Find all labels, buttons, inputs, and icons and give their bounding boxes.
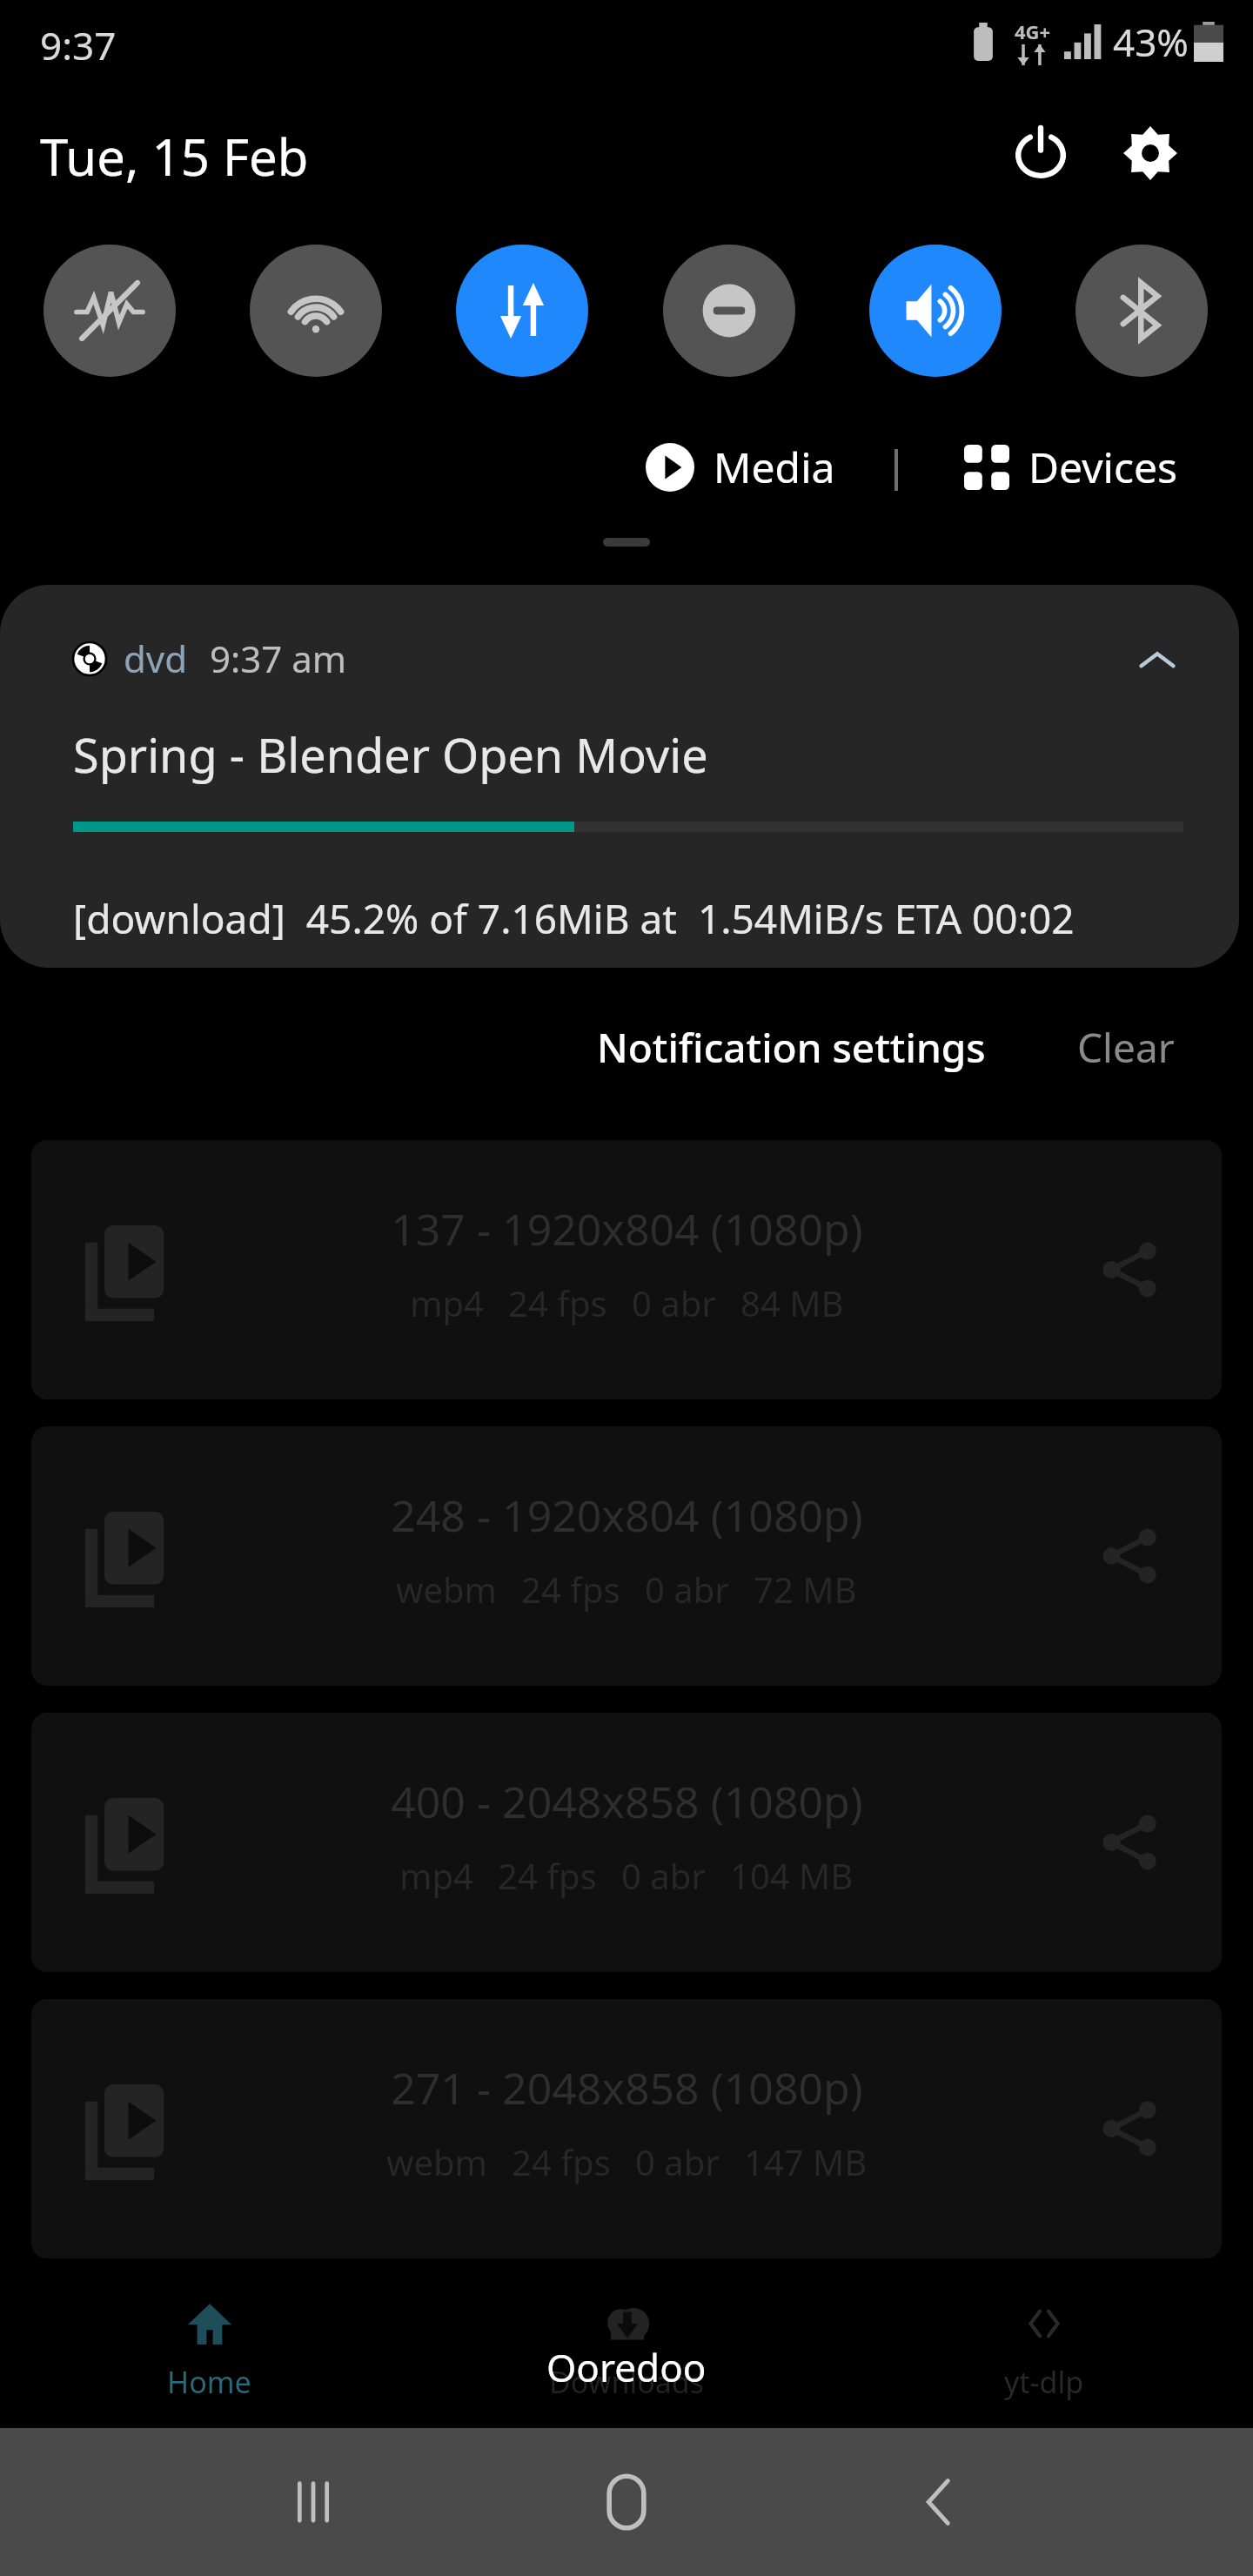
button[interactable]: Clear: [1063, 1010, 1189, 1085]
button[interactable]: 248 - 1920x804 (1080p): [31, 1426, 1222, 1686]
button[interactable]: Power: [999, 111, 1082, 195]
staticText: webm: [396, 1566, 497, 1613]
button[interactable]: Devices: [964, 439, 1178, 495]
button[interactable]: Do not disturb: [663, 245, 795, 377]
staticText: 147 MB: [744, 2138, 868, 2185]
staticText: [download] 45.2% of 7.16MiB at 1.54MiB/s…: [73, 891, 1075, 946]
staticText: Tue, 15 Feb: [40, 122, 309, 191]
button[interactable]: Wi-Fi: [250, 245, 382, 377]
button[interactable]: Sound: [869, 245, 1002, 377]
button[interactable]: Share: [1091, 1231, 1169, 1309]
staticText: mp4: [399, 1852, 473, 1899]
button[interactable]: Downloads: [418, 2298, 835, 2428]
staticText: Spring - Blender Open Movie: [73, 722, 708, 787]
staticText: mp4: [410, 1279, 484, 1326]
button[interactable]: Recents: [209, 2428, 418, 2576]
staticText: 24 fps: [512, 2138, 611, 2185]
button[interactable]: Media: [646, 439, 835, 495]
button[interactable]: Share: [1091, 2090, 1169, 2168]
staticText: 9:37 am: [210, 634, 347, 683]
staticText: 104 MB: [730, 1852, 854, 1899]
staticText: 137 - 1920x804 (1080p): [391, 1199, 863, 1258]
button[interactable]: yt-dlp: [835, 2298, 1253, 2428]
staticText: Media: [714, 439, 835, 495]
staticText: 84 MB: [740, 1279, 844, 1326]
button[interactable]: 400 - 2048x858 (1080p): [31, 1713, 1222, 1972]
staticText: Notification settings: [597, 1020, 986, 1075]
staticText: dvd: [124, 634, 187, 683]
staticText: 24 fps: [508, 1279, 607, 1326]
staticText: 4G+: [1015, 18, 1051, 44]
staticText: 0 abr: [635, 2138, 720, 2185]
staticText: Downloads: [549, 2362, 705, 2402]
staticText: 24 fps: [521, 1566, 620, 1613]
button[interactable]: Back: [835, 2428, 1044, 2576]
staticText: yt-dlp: [1004, 2362, 1084, 2402]
button[interactable]: Share: [1091, 1517, 1169, 1595]
staticText: 43%: [1113, 16, 1189, 68]
staticText: 0 abr: [645, 1566, 729, 1613]
button[interactable]: 271 - 2048x858 (1080p): [31, 1999, 1222, 2258]
button[interactable]: Mobile data: [456, 245, 588, 377]
staticText: 400 - 2048x858 (1080p): [391, 1772, 863, 1831]
button[interactable]: Vibrate: [44, 245, 176, 377]
staticText: Ooredoo: [546, 2341, 707, 2393]
button[interactable]: Collapse: [1122, 627, 1192, 696]
staticText: Devices: [1029, 439, 1178, 495]
button[interactable]: Home: [522, 2428, 731, 2576]
button[interactable]: 137 - 1920x804 (1080p): [31, 1140, 1222, 1399]
button[interactable]: dvd: [0, 585, 1239, 968]
staticText: 72 MB: [754, 1566, 857, 1613]
staticText: 271 - 2048x858 (1080p): [391, 2058, 863, 2117]
staticText: Clear: [1077, 1020, 1175, 1075]
staticText: Home: [167, 2362, 251, 2402]
button[interactable]: Bluetooth: [1075, 245, 1208, 377]
staticText: 248 - 1920x804 (1080p): [391, 1486, 863, 1545]
button[interactable]: Settings: [1109, 111, 1192, 195]
button[interactable]: Home: [0, 2298, 418, 2428]
staticText: 9:37: [40, 19, 117, 71]
button[interactable]: Share: [1091, 1803, 1169, 1882]
staticText: 0 abr: [632, 1279, 716, 1326]
staticText: webm: [386, 2138, 487, 2185]
button[interactable]: Notification settings: [583, 1010, 1000, 1085]
staticText: 24 fps: [498, 1852, 597, 1899]
staticText: 0 abr: [621, 1852, 706, 1899]
